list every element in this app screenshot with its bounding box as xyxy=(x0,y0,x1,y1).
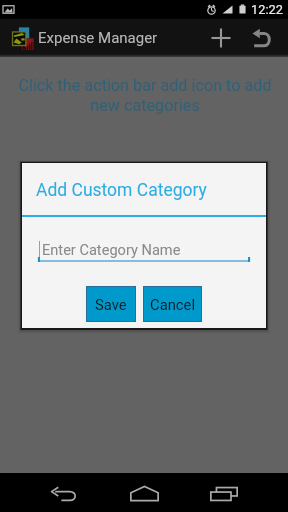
button[interactable]: Recent apps xyxy=(200,473,248,512)
button[interactable]: Cancel xyxy=(143,286,202,322)
staticText: Expense Manager xyxy=(38,29,158,47)
button[interactable]: Save xyxy=(86,286,136,322)
button[interactable]: Home xyxy=(120,473,168,512)
staticText: 12:22 xyxy=(251,2,283,17)
staticText: Cancel xyxy=(150,296,196,313)
button[interactable]: Add category xyxy=(199,19,243,57)
staticText: Click the action bar add icon to add new… xyxy=(11,76,279,114)
staticText: Save xyxy=(95,296,127,313)
button[interactable]: Back xyxy=(40,473,88,512)
staticText: Add Custom Category xyxy=(36,180,207,201)
button[interactable]: Undo xyxy=(239,19,283,57)
staticText: Enter Category Name xyxy=(42,241,181,258)
